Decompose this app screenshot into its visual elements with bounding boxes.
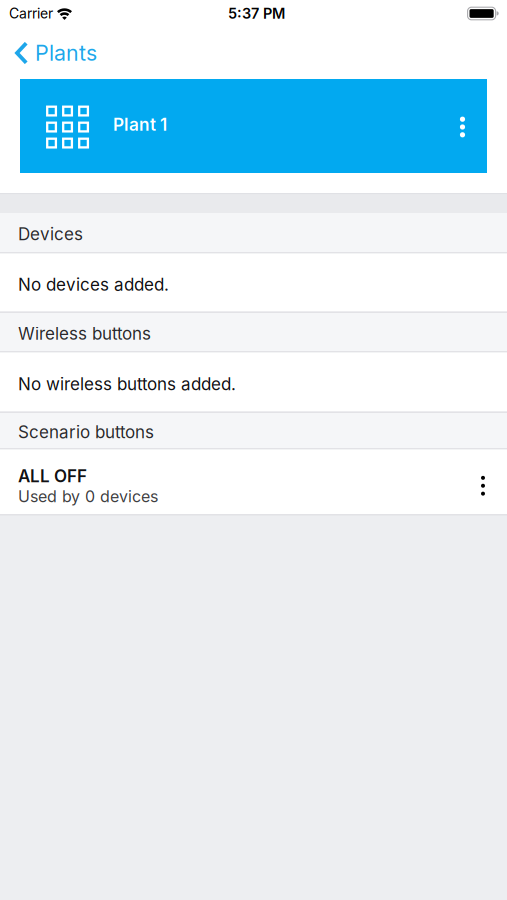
staticText: ALL OFF [18, 466, 87, 486]
button[interactable]: Plants [0, 40, 97, 66]
staticText: Scenario buttons [18, 422, 154, 442]
button[interactable]: Plant options [438, 79, 487, 173]
staticText: Plants [35, 40, 97, 66]
button[interactable]: ALL OFF [0, 449, 459, 514]
staticText: No devices added. [18, 274, 169, 295]
staticText: Plant 1 [113, 114, 167, 135]
staticText: Used by 0 devices [18, 487, 158, 506]
staticText: No wireless buttons added. [18, 374, 236, 394]
button[interactable]: Plant 1 [20, 79, 438, 173]
staticText: Carrier [9, 5, 53, 22]
button[interactable]: Scenario options [459, 449, 507, 514]
staticText: Devices [18, 224, 83, 244]
staticText: Wireless buttons [18, 323, 151, 344]
staticText: 5:37 PM [228, 5, 285, 22]
